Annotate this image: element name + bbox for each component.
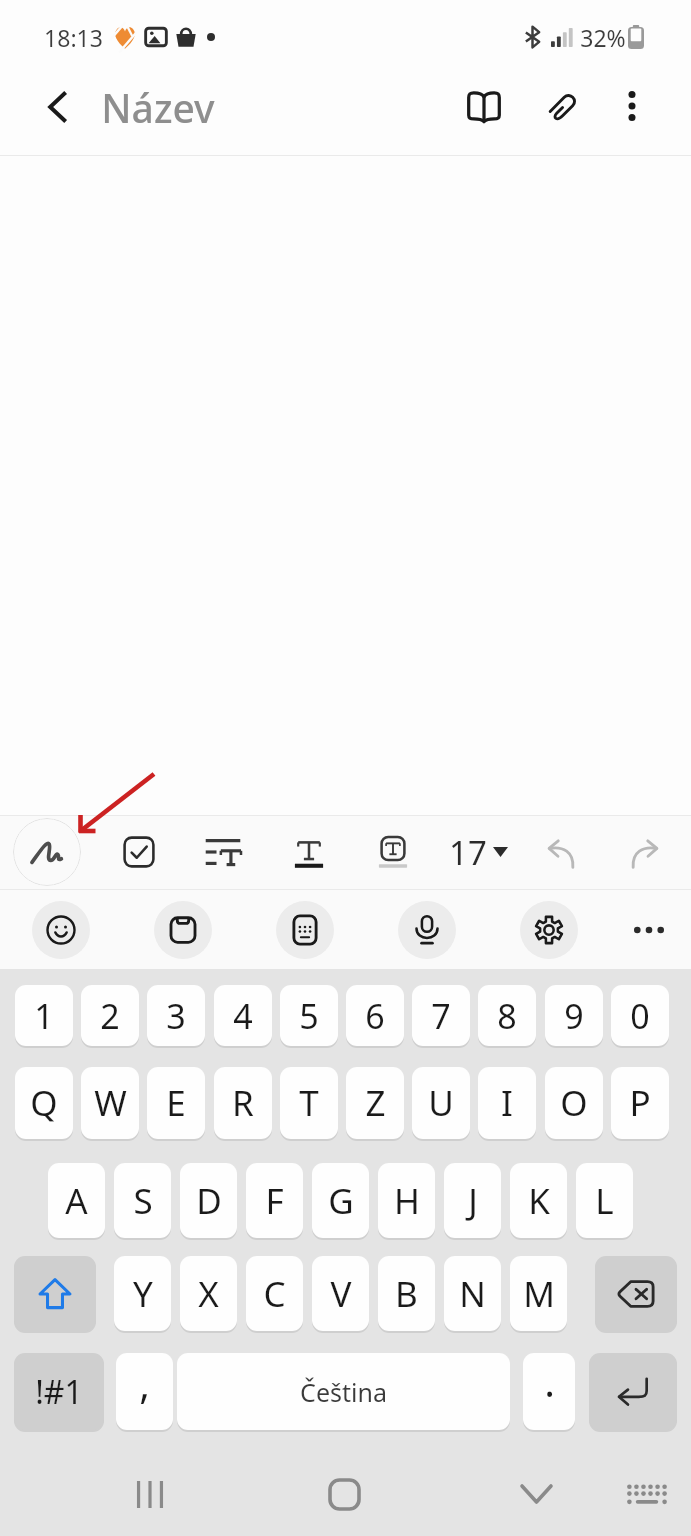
staticText: Z: [365, 1079, 386, 1127]
staticText: X: [198, 1270, 219, 1318]
staticText: G: [328, 1177, 354, 1225]
staticText: W: [94, 1079, 127, 1127]
button[interactable]: Reading mode: [452, 74, 516, 138]
button[interactable]: 8: [478, 985, 536, 1046]
button[interactable]: Y: [114, 1256, 171, 1331]
button[interactable]: P: [611, 1067, 669, 1139]
button[interactable]: S: [114, 1163, 171, 1238]
button[interactable]: More options: [604, 78, 660, 134]
button[interactable]: E: [147, 1067, 205, 1139]
button[interactable]: Handwriting: [13, 818, 81, 886]
button[interactable]: J: [444, 1163, 501, 1238]
button[interactable]: Q: [15, 1067, 73, 1139]
staticText: 17: [449, 830, 487, 875]
button[interactable]: A: [48, 1163, 105, 1238]
staticText: M: [523, 1270, 555, 1318]
button[interactable]: Keyboard settings: [520, 901, 578, 959]
button[interactable]: Z: [346, 1067, 404, 1139]
button[interactable]: 5: [280, 985, 338, 1046]
staticText: 7: [431, 993, 451, 1039]
button[interactable]: T: [280, 1067, 338, 1139]
staticText: 6: [365, 993, 385, 1039]
button[interactable]: Paragraph style: [191, 820, 255, 884]
button[interactable]: Attach file: [532, 74, 596, 138]
button[interactable]: M: [510, 1256, 567, 1331]
button[interactable]: Change keyboard: [618, 1465, 676, 1523]
button[interactable]: Shift: [14, 1256, 96, 1331]
button[interactable]: Undo: [530, 823, 592, 885]
staticText: .: [544, 1354, 555, 1408]
button[interactable]: More: [622, 903, 676, 957]
staticText: N: [459, 1270, 486, 1318]
button[interactable]: 4: [214, 985, 272, 1046]
staticText: 4: [233, 993, 253, 1039]
staticText: R: [232, 1079, 254, 1127]
button[interactable]: Text style: [277, 820, 341, 884]
button[interactable]: Enter: [589, 1353, 677, 1430]
staticText: O: [560, 1079, 588, 1127]
button[interactable]: 1: [15, 985, 73, 1046]
button[interactable]: H: [378, 1163, 435, 1238]
staticText: B: [395, 1270, 418, 1318]
staticText: I: [501, 1079, 513, 1127]
staticText: J: [468, 1177, 478, 1225]
button[interactable]: 6: [346, 985, 404, 1046]
staticText: 18:13: [44, 22, 103, 52]
button[interactable]: ,: [116, 1353, 173, 1430]
button[interactable]: Clipboard: [154, 901, 212, 959]
staticText: H: [394, 1177, 420, 1225]
staticText: 32%: [580, 22, 626, 52]
button[interactable]: L: [576, 1163, 633, 1238]
button[interactable]: Redo: [613, 823, 675, 885]
button[interactable]: V: [312, 1256, 369, 1331]
button[interactable]: O: [545, 1067, 603, 1139]
staticText: F: [265, 1177, 284, 1225]
button[interactable]: G: [312, 1163, 369, 1238]
button[interactable]: .: [523, 1353, 575, 1430]
button[interactable]: D: [180, 1163, 237, 1238]
button[interactable]: K: [510, 1163, 567, 1238]
button[interactable]: Checklist: [107, 820, 171, 884]
staticText: A: [65, 1177, 88, 1225]
button[interactable]: W: [81, 1067, 139, 1139]
staticText: V: [330, 1270, 352, 1318]
button[interactable]: F: [246, 1163, 303, 1238]
button[interactable]: Voice input: [398, 901, 456, 959]
staticText: 5: [299, 993, 319, 1039]
staticText: 1: [34, 993, 54, 1039]
button[interactable]: R: [214, 1067, 272, 1139]
staticText: Y: [133, 1270, 153, 1318]
staticText: 0: [630, 993, 650, 1039]
button[interactable]: C: [246, 1256, 303, 1331]
staticText: K: [528, 1177, 550, 1225]
button[interactable]: !#1: [14, 1353, 104, 1430]
button[interactable]: 17: [449, 826, 508, 878]
staticText: !#1: [35, 1370, 83, 1414]
button[interactable]: Back: [23, 73, 91, 141]
staticText: Název: [101, 81, 215, 134]
button[interactable]: X: [180, 1256, 237, 1331]
staticText: S: [133, 1177, 153, 1225]
staticText: ,: [139, 1356, 150, 1410]
button[interactable]: Keyboard layout: [276, 901, 334, 959]
button[interactable]: 9: [545, 985, 603, 1046]
button[interactable]: 3: [147, 985, 205, 1046]
button[interactable]: 0: [611, 985, 669, 1046]
staticText: 8: [497, 993, 517, 1039]
button[interactable]: 7: [412, 985, 470, 1046]
button[interactable]: Backspace: [595, 1256, 677, 1331]
button[interactable]: Emoji: [32, 901, 90, 959]
button[interactable]: Hide keyboard: [507, 1465, 565, 1523]
button[interactable]: Text box: [361, 820, 425, 884]
button[interactable]: Čeština: [177, 1353, 510, 1430]
button[interactable]: B: [378, 1256, 435, 1331]
button[interactable]: Recent apps: [121, 1465, 179, 1523]
button[interactable]: U: [412, 1067, 470, 1139]
button[interactable]: 2: [81, 985, 139, 1046]
staticText: P: [629, 1079, 651, 1127]
staticText: Q: [30, 1079, 58, 1127]
button[interactable]: N: [444, 1256, 501, 1331]
staticText: C: [263, 1270, 286, 1318]
button[interactable]: I: [478, 1067, 536, 1139]
button[interactable]: Home: [315, 1465, 373, 1523]
